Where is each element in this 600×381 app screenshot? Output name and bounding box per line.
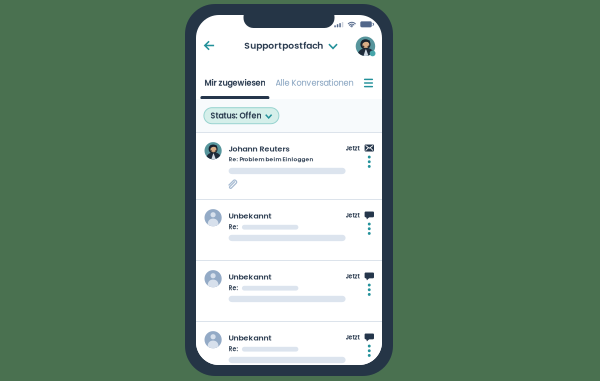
button[interactable]: Supportpostfach	[244, 35, 338, 55]
button[interactable]: Unbekannt	[196, 261, 382, 321]
staticText: Status: Offen	[210, 110, 261, 121]
button[interactable]: Mir zugewiesen	[200, 77, 269, 99]
staticText: Alle Konversationen	[276, 77, 354, 89]
button[interactable]: Profile	[356, 36, 375, 56]
staticText: Johann Reuters	[229, 143, 290, 154]
button[interactable]: Status: Offen	[204, 108, 279, 124]
staticText: Jetzt	[345, 272, 359, 281]
button[interactable]: Alle Konversationen	[276, 77, 354, 89]
staticText: Unbekannt	[229, 271, 272, 282]
staticText: Re: Problem beim Einloggen	[229, 155, 314, 163]
staticText: Re:	[229, 223, 239, 231]
button[interactable]: Johann Reuters	[196, 133, 382, 199]
button[interactable]: Menu	[361, 77, 375, 89]
button[interactable]: Unbekannt	[196, 322, 382, 366]
staticText: Jetzt	[345, 211, 359, 220]
button[interactable]: Back	[199, 35, 219, 55]
staticText: Jetzt	[345, 144, 359, 153]
staticText: Unbekannt	[229, 332, 272, 343]
staticText: Unbekannt	[229, 210, 272, 221]
staticText: Mir zugewiesen	[204, 77, 265, 89]
staticText: Re:	[229, 345, 239, 353]
staticText: Supportpostfach	[244, 39, 323, 52]
staticText: Jetzt	[345, 333, 359, 342]
button[interactable]: Unbekannt	[196, 200, 382, 260]
staticText: Re:	[229, 284, 239, 292]
